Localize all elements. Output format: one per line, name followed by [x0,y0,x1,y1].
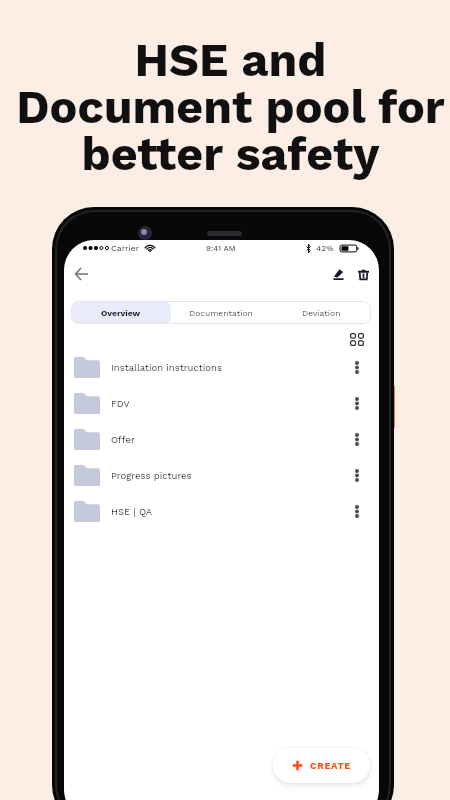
staticText: better safety [81,127,380,182]
button[interactable]: Progress pictures [64,457,379,493]
staticText: Installation instructions [111,362,222,373]
staticText: HSE | QA [111,506,153,517]
button[interactable]: More options [344,426,370,452]
button[interactable]: Delete [350,261,376,287]
button[interactable]: More options [344,498,370,524]
button[interactable]: Overview [71,301,171,324]
button[interactable]: Back [68,261,94,287]
button[interactable]: Installation instructions [64,349,379,385]
button[interactable]: More options [344,390,370,416]
staticText: Documentation [189,308,253,318]
button[interactable]: Grid view [347,329,367,349]
button[interactable]: Documentation [171,301,271,324]
staticText: 9:41 AM [206,244,236,253]
button[interactable]: CREATE [273,748,370,783]
button[interactable]: Edit [325,261,351,287]
button[interactable]: More options [344,462,370,488]
staticText: FDV [111,398,130,409]
staticText: HSE and [134,33,327,88]
button[interactable]: HSE | QA [64,493,379,529]
staticText: CREATE [310,760,352,771]
staticText: Progress pictures [111,470,192,481]
button[interactable]: FDV [64,385,379,421]
button[interactable]: Deviation [271,301,371,324]
staticText: Document pool for [16,80,445,135]
button[interactable]: Offer [64,421,379,457]
staticText: Carrier [111,243,140,253]
staticText: Deviation [302,308,341,318]
button[interactable]: More options [344,354,370,380]
staticText: Overview [101,308,141,318]
staticText: Offer [111,434,135,445]
staticText: 42% [316,243,334,253]
